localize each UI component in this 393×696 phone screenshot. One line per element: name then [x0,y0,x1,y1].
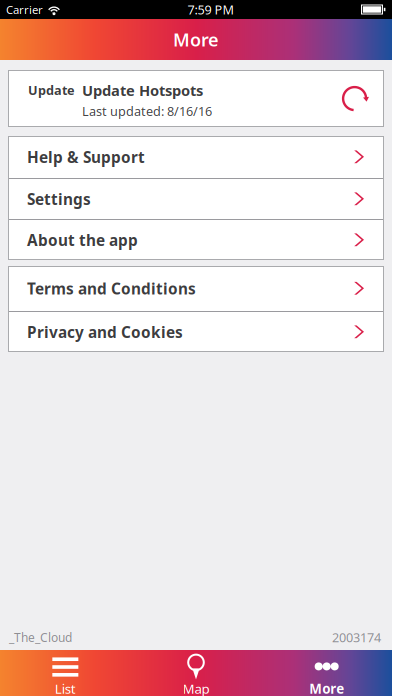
button[interactable]: Terms and Conditions [8,266,384,311]
button[interactable]: Update [8,70,384,127]
button[interactable]: Privacy and Cookies [8,312,384,352]
staticText: More [173,27,219,52]
staticText: Terms and Conditions [27,278,196,299]
button[interactable]: More [261,650,392,696]
staticText: List [55,679,76,696]
staticText: Privacy and Cookies [27,322,183,342]
staticText: 7:59 PM [187,1,233,18]
button[interactable]: Help & Support [8,136,384,178]
staticText: More [309,679,344,696]
staticText: Update [28,81,75,99]
staticText: Map [182,679,209,696]
staticText: Help & Support [27,147,145,167]
staticText: _The_Cloud [9,629,72,645]
staticText: Settings [27,189,91,209]
staticText: 2003174 [332,629,381,646]
staticText: About the app [27,230,138,250]
staticText: Update Hotspots [82,80,203,100]
staticText: Last updated: 8/16/16 [82,102,212,120]
staticText: Carrier [6,2,43,17]
button[interactable]: Settings [8,179,384,219]
button[interactable]: About the app [8,220,384,260]
button[interactable]: List [0,650,131,696]
button[interactable]: Map [131,650,261,696]
